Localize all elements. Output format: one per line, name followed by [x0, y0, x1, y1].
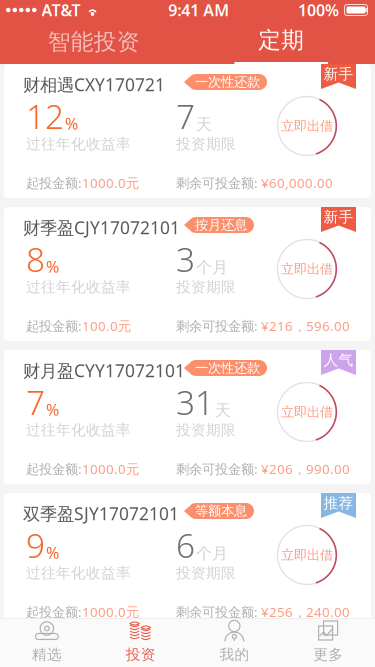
staticText: 天: [196, 115, 212, 134]
staticText: 起投金额:: [26, 174, 82, 192]
staticText: 智能投资: [48, 28, 140, 56]
staticText: 新手: [323, 208, 353, 226]
staticText: 等额本息: [195, 503, 247, 519]
staticText: 剩余可投金额:: [176, 603, 258, 621]
staticText: 过往年化收益率: [26, 135, 131, 153]
button[interactable]: 我的: [187, 618, 281, 667]
staticText: 1000.0元: [82, 174, 139, 192]
staticText: 投资期限: [176, 564, 236, 582]
button[interactable]: 立即出借: [277, 96, 337, 156]
staticText: 天: [215, 401, 231, 420]
staticText: 9:41 AM: [168, 0, 229, 21]
staticText: 财相遇CXY170721: [23, 73, 165, 96]
staticText: 个月: [196, 258, 228, 277]
staticText: 起投金额:: [26, 317, 82, 335]
staticText: 一次性还款: [195, 360, 260, 376]
staticText: %: [65, 113, 78, 134]
staticText: 立即出借: [281, 261, 333, 277]
staticText: 更多: [313, 645, 343, 663]
staticText: 投资: [126, 645, 156, 663]
staticText: 9: [26, 523, 45, 567]
staticText: 精选: [32, 645, 62, 663]
staticText: 过往年化收益率: [26, 421, 131, 439]
button[interactable]: 立即出借: [277, 382, 337, 442]
staticText: 100%: [298, 0, 339, 21]
staticText: 推荐: [323, 494, 353, 512]
button[interactable]: 财季盈CJY17072101: [4, 207, 371, 341]
staticText: ¥216，596.00: [261, 317, 350, 335]
button[interactable]: 立即出借: [277, 239, 337, 299]
staticText: %: [46, 399, 59, 420]
button[interactable]: 财月盈CYY17072101: [4, 350, 371, 484]
staticText: 起投金额:: [26, 603, 82, 621]
button[interactable]: 双季盈SJY17072101: [4, 493, 371, 627]
staticText: ¥206，990.00: [261, 460, 350, 478]
staticText: 剩余可投金额:: [176, 174, 258, 192]
staticText: 新手: [323, 65, 353, 83]
staticText: 7: [26, 380, 45, 424]
button[interactable]: 更多: [281, 618, 375, 667]
staticText: 财季盈CJY17072101: [23, 216, 180, 239]
staticText: 100.0元: [82, 317, 131, 335]
staticText: 投资期限: [176, 421, 236, 439]
button[interactable]: 立即出借: [277, 525, 337, 585]
staticText: 3: [176, 237, 195, 281]
staticText: 剩余可投金额:: [176, 317, 258, 335]
staticText: 我的: [219, 645, 249, 663]
button[interactable]: 精选: [0, 618, 94, 667]
staticText: 1000.0元: [82, 460, 139, 478]
staticText: 财月盈CYY17072101: [23, 359, 185, 382]
staticText: 人气: [323, 351, 353, 369]
button[interactable]: 投资: [94, 618, 188, 667]
button[interactable]: 定期: [187, 20, 375, 64]
staticText: 7: [176, 94, 195, 138]
staticText: 过往年化收益率: [26, 278, 131, 296]
staticText: 按月还息: [195, 217, 247, 233]
staticText: 起投金额:: [26, 460, 82, 478]
staticText: 投资期限: [176, 278, 236, 296]
staticText: 投资期限: [176, 135, 236, 153]
staticText: 一次性还款: [195, 74, 260, 90]
staticText: 31: [176, 380, 214, 424]
staticText: 12: [26, 94, 64, 138]
staticText: 立即出借: [281, 404, 333, 420]
staticText: AT&T: [41, 0, 80, 21]
staticText: 8: [26, 237, 45, 281]
staticText: 1000.0元: [82, 603, 139, 621]
button[interactable]: 财相遇CXY170721: [4, 64, 371, 198]
button[interactable]: 智能投资: [0, 20, 187, 64]
staticText: 立即出借: [281, 547, 333, 563]
staticText: 个月: [196, 544, 228, 563]
staticText: 双季盈SJY17072101: [23, 502, 179, 525]
staticText: ¥60,000.00: [261, 174, 333, 192]
staticText: 立即出借: [281, 118, 333, 134]
staticText: 剩余可投金额:: [176, 460, 258, 478]
staticText: 过往年化收益率: [26, 564, 131, 582]
staticText: 定期: [258, 26, 304, 54]
staticText: ¥256，240.00: [261, 603, 350, 621]
staticText: %: [46, 256, 59, 277]
staticText: [258, 603, 261, 621]
staticText: 6: [176, 523, 195, 567]
staticText: %: [46, 542, 59, 563]
